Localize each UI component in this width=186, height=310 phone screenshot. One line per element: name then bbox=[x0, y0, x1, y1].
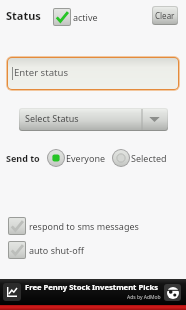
button[interactable]: Selected bbox=[112, 149, 167, 167]
button[interactable]: Clear bbox=[152, 6, 178, 25]
staticText: Enter status bbox=[14, 66, 69, 79]
button[interactable]: respond to sms messages bbox=[8, 217, 139, 235]
staticText: Status bbox=[6, 8, 41, 23]
staticText: auto shut-off bbox=[29, 244, 84, 256]
button[interactable]: Free Penny Stock Investment Picks bbox=[0, 279, 186, 305]
staticText: Clear bbox=[155, 10, 175, 21]
staticText: Select Status bbox=[25, 112, 79, 124]
staticText: Send to bbox=[6, 152, 40, 164]
staticText: Everyone bbox=[66, 152, 106, 164]
button[interactable]: active bbox=[53, 8, 98, 26]
button[interactable]: Enter status bbox=[8, 58, 178, 89]
button[interactable]: Everyone bbox=[47, 149, 106, 167]
button[interactable]: AdMob info bbox=[164, 284, 181, 301]
staticText: Ads by AdMob bbox=[127, 294, 161, 301]
staticText: Selected bbox=[131, 152, 167, 164]
button[interactable]: Select Status bbox=[20, 109, 167, 130]
staticText: active bbox=[73, 11, 98, 23]
button[interactable]: auto shut-off bbox=[8, 241, 84, 259]
staticText: Free Penny Stock Investment Picks bbox=[25, 282, 158, 292]
staticText: respond to sms messages bbox=[29, 220, 139, 232]
